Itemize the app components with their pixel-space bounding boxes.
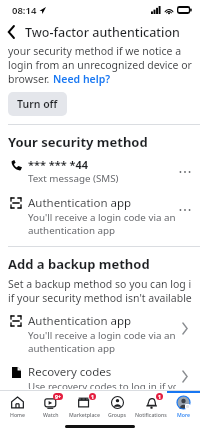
staticText: Home <box>10 411 25 418</box>
button[interactable]: Groups <box>101 391 134 421</box>
staticText: *** *** *44 <box>28 157 89 172</box>
staticText: Groups <box>108 411 127 418</box>
staticText: authentication app <box>28 224 116 237</box>
button[interactable]: Back <box>0 21 22 43</box>
staticText: Notifications <box>135 411 167 418</box>
staticText: Authentication app <box>28 313 132 329</box>
button[interactable]: Turn off <box>8 92 67 116</box>
staticText: 08:14 <box>12 4 37 17</box>
staticText: More <box>177 411 190 418</box>
staticText: Watch <box>43 411 59 418</box>
staticText: if your security method isn't available. <box>8 291 192 305</box>
button[interactable]: Authentication app <box>0 194 200 238</box>
staticText: You'll receive a login code via an <box>28 329 176 342</box>
staticText: 1 <box>158 393 161 400</box>
staticText: Marketplace <box>69 411 100 418</box>
button[interactable]: More <box>167 391 200 421</box>
button[interactable]: 9+ <box>34 391 68 421</box>
button[interactable]: Need help? <box>53 72 111 86</box>
button[interactable]: Recovery codes <box>0 363 200 390</box>
staticText: Turn off <box>17 97 58 111</box>
button[interactable]: *** *** *44 <box>0 156 200 188</box>
staticText: 1 <box>91 393 94 400</box>
staticText: Text message (SMS) <box>28 172 119 185</box>
staticText: login from an unrecognized device or <box>8 58 192 72</box>
button[interactable]: Home <box>0 391 34 421</box>
button[interactable]: 1 <box>134 391 167 421</box>
staticText: Your security method <box>8 133 148 151</box>
staticText: Authentication app <box>28 195 132 211</box>
staticText: 9+ <box>55 393 61 400</box>
staticText: Two-factor authentication <box>25 24 180 41</box>
staticText: Add a backup method <box>8 255 150 273</box>
button[interactable]: Authentication app <box>0 312 200 356</box>
staticText: Need help? <box>53 72 111 86</box>
staticText: browser. <box>8 72 53 86</box>
staticText: Use recovery codes to log in if you <box>28 380 176 389</box>
staticText: Recovery codes <box>28 364 112 380</box>
staticText: Set a backup method so you can log in ev… <box>8 277 192 291</box>
staticText: your security method if we notice a <box>8 44 182 58</box>
staticText: You'll receive a login code via an <box>28 211 176 224</box>
button[interactable]: 1 <box>68 391 101 421</box>
staticText: authentication app <box>28 342 116 355</box>
